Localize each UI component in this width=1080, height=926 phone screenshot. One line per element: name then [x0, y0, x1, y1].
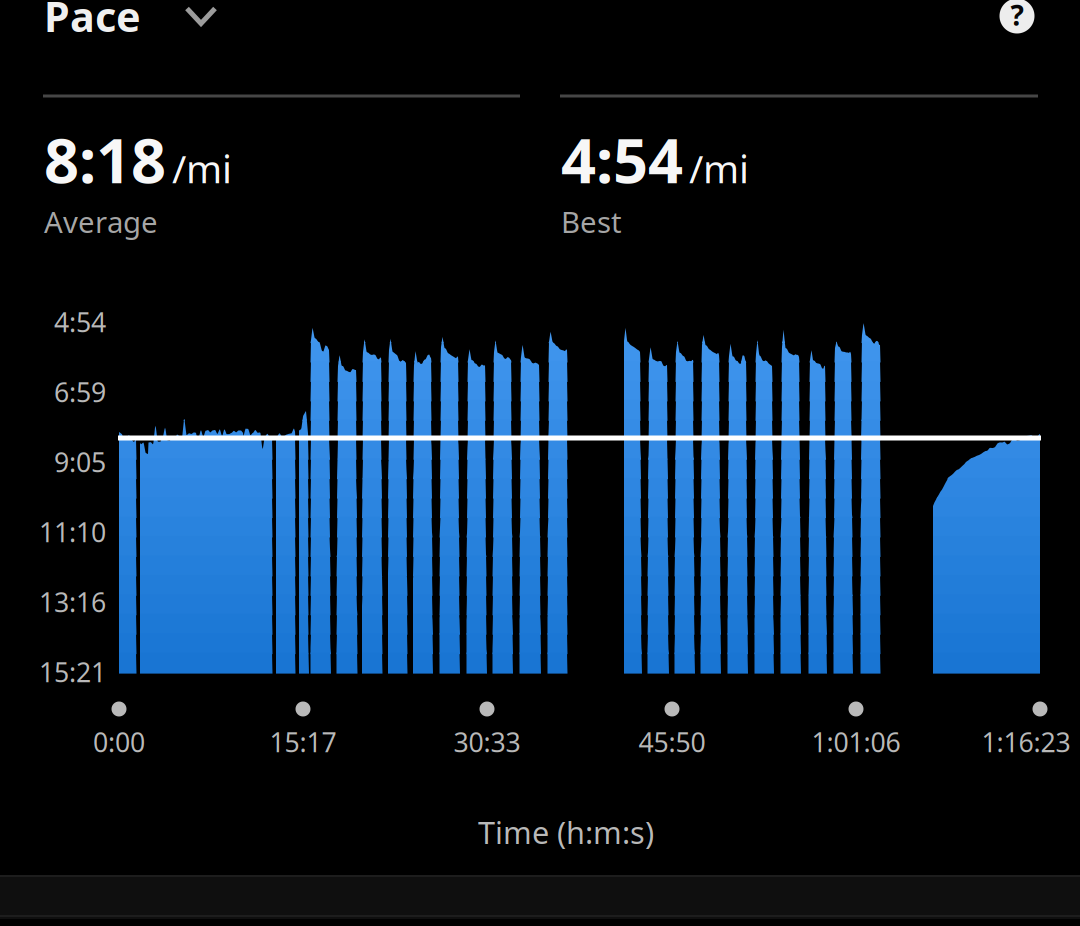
staticText: Average: [44, 202, 158, 241]
staticText: 13:16: [39, 584, 106, 620]
staticText: 8:18: [44, 119, 166, 200]
staticText: Best: [561, 202, 622, 241]
staticText: 11:10: [39, 514, 106, 550]
staticText: 30:33: [453, 724, 520, 760]
staticText: 0:00: [93, 724, 145, 760]
staticText: Pace: [44, 0, 141, 43]
staticText: 4:54: [54, 304, 106, 340]
staticText: 1:01:06: [811, 724, 900, 760]
staticText: /mi: [689, 143, 749, 194]
staticText: ?: [1010, 0, 1023, 34]
staticText: 6:59: [54, 374, 106, 410]
button[interactable]: Help: [989, 0, 1045, 44]
staticText: 9:05: [54, 444, 106, 480]
staticText: 45:50: [638, 724, 705, 760]
staticText: 15:17: [269, 724, 336, 760]
staticText: 4:54: [561, 119, 683, 200]
staticText: 1:16:23: [981, 724, 1070, 760]
staticText: /mi: [172, 143, 232, 194]
staticText: Time (h:m:s): [478, 812, 654, 852]
staticText: 15:21: [39, 654, 106, 690]
button[interactable]: Pace: [44, 0, 231, 44]
